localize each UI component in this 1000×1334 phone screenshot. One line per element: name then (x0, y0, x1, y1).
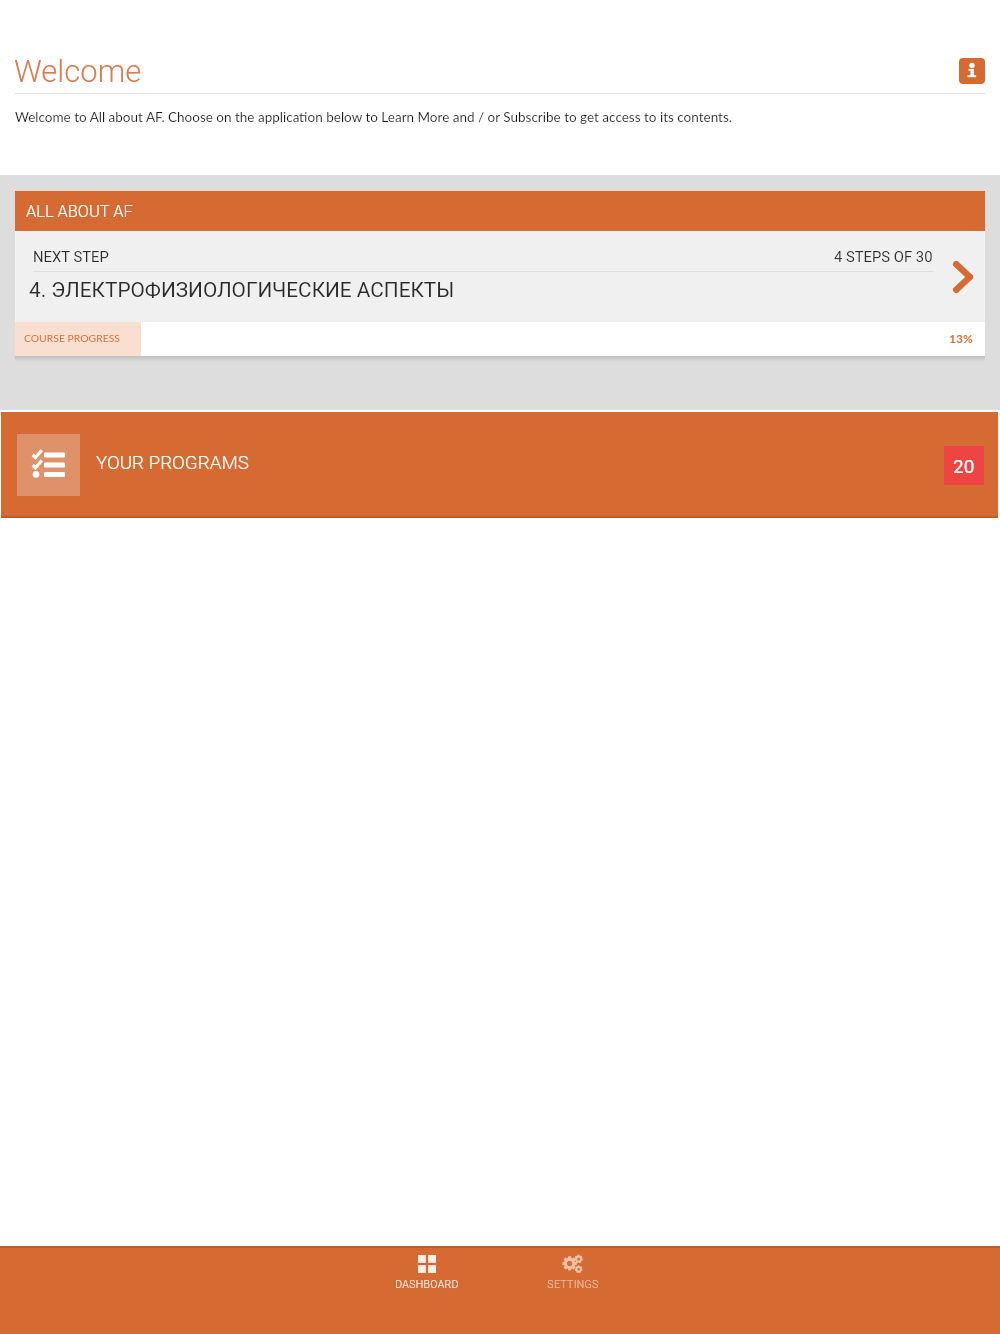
button[interactable]: YOUR PROGRAMS (1, 412, 998, 518)
button[interactable]: DASHBOARD (381, 1251, 473, 1294)
staticText: DASHBOARD (395, 1278, 459, 1290)
button[interactable]: All about AF course card (15, 191, 985, 362)
button[interactable]: Open course (952, 260, 974, 294)
staticText: Welcome (14, 53, 142, 89)
staticText: YOUR PROGRAMS (96, 452, 249, 474)
staticText: 4. ЭЛЕКТРОФИЗИОЛОГИЧЕСКИЕ АСПЕКТЫ (29, 278, 455, 302)
staticText: Welcome to All about AF. Choose on the a… (15, 109, 732, 125)
staticText: 13% (949, 331, 973, 345)
staticText: 4 STEPS OF 30 (834, 248, 933, 265)
button[interactable]: SETTINGS (527, 1251, 619, 1294)
staticText: NEXT STEP (33, 248, 109, 265)
staticText: COURSE PROGRESS (24, 332, 120, 344)
staticText: 20 (953, 455, 975, 477)
staticText: ALL ABOUT AF (26, 202, 133, 221)
staticText: SETTINGS (547, 1278, 599, 1290)
button[interactable]: Info (959, 58, 985, 84)
